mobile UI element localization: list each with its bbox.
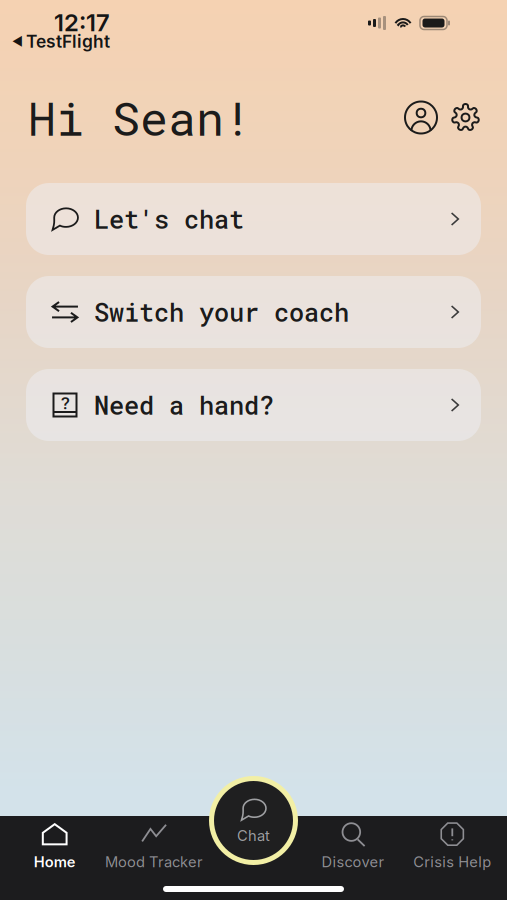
staticText: ? xyxy=(60,391,70,414)
staticText: Let's chat xyxy=(94,202,244,236)
staticText: Home xyxy=(34,853,76,871)
staticText: Need a hand? xyxy=(94,388,274,422)
button[interactable]: Mood Tracker xyxy=(104,823,204,871)
button[interactable]: Crisis Help xyxy=(403,823,502,871)
staticText: Mood Tracker xyxy=(105,853,203,871)
button[interactable]: Switch your coach xyxy=(26,276,481,348)
button[interactable]: Discover xyxy=(303,823,403,871)
staticText: TestFlight xyxy=(26,31,110,52)
button[interactable]: Settings xyxy=(444,103,480,132)
button[interactable]: ? xyxy=(26,369,481,441)
staticText: Hi Sean! xyxy=(28,87,252,148)
staticText: Crisis Help xyxy=(413,853,491,871)
button[interactable]: Let's chat xyxy=(26,183,481,255)
staticText: Chat xyxy=(237,827,270,844)
staticText: Switch your coach xyxy=(94,295,349,329)
staticText: ◀ xyxy=(12,34,23,49)
button[interactable]: Home xyxy=(5,823,104,871)
staticText: Discover xyxy=(321,853,384,871)
button[interactable]: Profile xyxy=(405,101,444,133)
staticText: 12:17 xyxy=(54,8,110,37)
button[interactable]: Chat xyxy=(209,776,298,865)
